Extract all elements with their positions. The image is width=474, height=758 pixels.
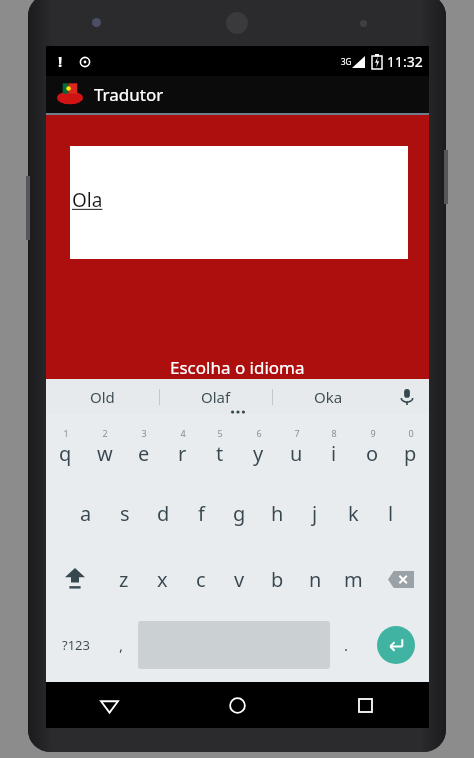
staticText: w: [97, 440, 113, 467]
staticText: 1: [63, 427, 69, 439]
staticText: 6: [256, 427, 262, 439]
staticText: s: [120, 500, 130, 527]
button[interactable]: Delete: [372, 546, 429, 612]
button[interactable]: Home: [173, 682, 301, 728]
button[interactable]: Shift: [46, 546, 104, 612]
button[interactable]: d: [144, 480, 182, 546]
button[interactable]: g: [220, 480, 258, 546]
staticText: ,: [119, 635, 124, 655]
button[interactable]: Old: [46, 379, 159, 414]
staticText: i: [331, 440, 337, 467]
staticText: 0: [408, 427, 414, 439]
staticText: Ola: [72, 187, 103, 213]
staticText: l: [388, 500, 394, 527]
button[interactable]: Recent apps: [301, 682, 429, 728]
staticText: n: [309, 566, 322, 593]
staticText: 8: [331, 427, 337, 439]
staticText: .: [344, 635, 349, 655]
button[interactable]: Oka: [272, 379, 385, 414]
staticText: v: [234, 566, 245, 593]
staticText: 7: [294, 427, 300, 439]
button[interactable]: l: [372, 480, 410, 546]
button[interactable]: v: [220, 546, 258, 612]
button[interactable]: ?123: [46, 612, 105, 678]
staticText: k: [348, 500, 359, 527]
staticText: 4: [180, 427, 186, 439]
staticText: Escolha o idioma: [170, 356, 305, 379]
staticText: z: [119, 566, 129, 593]
button[interactable]: 1: [46, 414, 85, 480]
button[interactable]: 3: [124, 414, 163, 480]
button[interactable]: s: [105, 480, 144, 546]
button[interactable]: Voice input: [385, 379, 429, 414]
button[interactable]: n: [296, 546, 334, 612]
button[interactable]: Ola: [70, 146, 408, 259]
staticText: b: [271, 566, 284, 593]
button[interactable]: j: [296, 480, 334, 546]
staticText: h: [271, 500, 284, 527]
staticText: 2: [102, 427, 108, 439]
button[interactable]: .: [330, 612, 363, 678]
button[interactable]: 5: [201, 414, 239, 480]
staticText: Tradutor: [94, 83, 164, 106]
button[interactable]: 0: [391, 414, 429, 480]
button[interactable]: h: [258, 480, 296, 546]
staticText: Old: [90, 387, 115, 407]
staticText: 3: [141, 427, 147, 439]
button[interactable]: f: [182, 480, 220, 546]
staticText: ?123: [62, 636, 90, 654]
button[interactable]: a: [66, 480, 105, 546]
button[interactable]: 6: [239, 414, 277, 480]
staticText: q: [59, 440, 72, 467]
button[interactable]: 8: [315, 414, 353, 480]
staticText: 9: [370, 427, 376, 439]
button[interactable]: m: [334, 546, 372, 612]
staticText: o: [366, 440, 379, 467]
button[interactable]: 4: [163, 414, 201, 480]
staticText: t: [216, 440, 224, 467]
button[interactable]: z: [104, 546, 143, 612]
button[interactable]: Olaf: [159, 379, 272, 414]
staticText: a: [80, 500, 92, 527]
button[interactable]: ,: [105, 612, 138, 678]
staticText: d: [157, 500, 170, 527]
button[interactable]: Back: [46, 682, 173, 728]
staticText: r: [178, 440, 187, 467]
staticText: p: [404, 440, 417, 467]
staticText: 5: [217, 427, 223, 439]
staticText: y: [253, 440, 264, 467]
button[interactable]: x: [143, 546, 182, 612]
staticText: e: [138, 440, 150, 467]
staticText: x: [157, 566, 168, 593]
button[interactable]: k: [334, 480, 372, 546]
staticText: !: [58, 51, 63, 71]
staticText: Oka: [314, 387, 343, 407]
staticText: g: [233, 500, 246, 527]
button[interactable]: Enter: [377, 626, 415, 664]
staticText: m: [344, 566, 363, 593]
button[interactable]: c: [182, 546, 220, 612]
button[interactable]: 2: [85, 414, 124, 480]
button[interactable]: 9: [353, 414, 391, 480]
staticText: j: [312, 500, 318, 527]
staticText: 3G: [341, 56, 352, 67]
button[interactable]: b: [258, 546, 296, 612]
staticText: u: [290, 440, 303, 467]
button[interactable]: 7: [277, 414, 315, 480]
staticText: c: [196, 566, 206, 593]
staticText: f: [198, 500, 205, 527]
staticText: 11:32: [387, 52, 423, 71]
staticText: Olaf: [201, 387, 231, 407]
